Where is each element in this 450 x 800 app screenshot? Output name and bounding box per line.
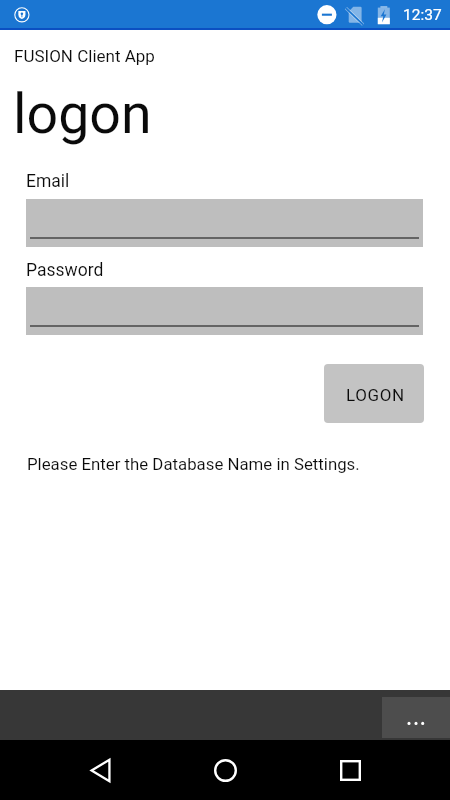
staticText: 12:37 bbox=[403, 6, 442, 24]
staticText: Please Enter the Database Name in Settin… bbox=[27, 454, 360, 474]
staticText: FUSION Client App bbox=[14, 46, 155, 66]
button[interactable]: Recent apps bbox=[328, 748, 372, 792]
button[interactable]: Home bbox=[203, 748, 247, 792]
button[interactable] bbox=[26, 287, 423, 335]
button[interactable]: LOGON bbox=[324, 364, 424, 423]
button[interactable]: Back bbox=[78, 748, 122, 792]
staticText: Password bbox=[26, 260, 104, 281]
staticText: LOGON bbox=[346, 385, 405, 405]
other: VPN active bbox=[10, 3, 34, 27]
button[interactable] bbox=[26, 199, 423, 247]
staticText: Email bbox=[26, 171, 70, 192]
other: Do not disturb bbox=[317, 5, 337, 25]
staticText: logon bbox=[13, 82, 152, 147]
button[interactable]: More options bbox=[382, 697, 450, 738]
